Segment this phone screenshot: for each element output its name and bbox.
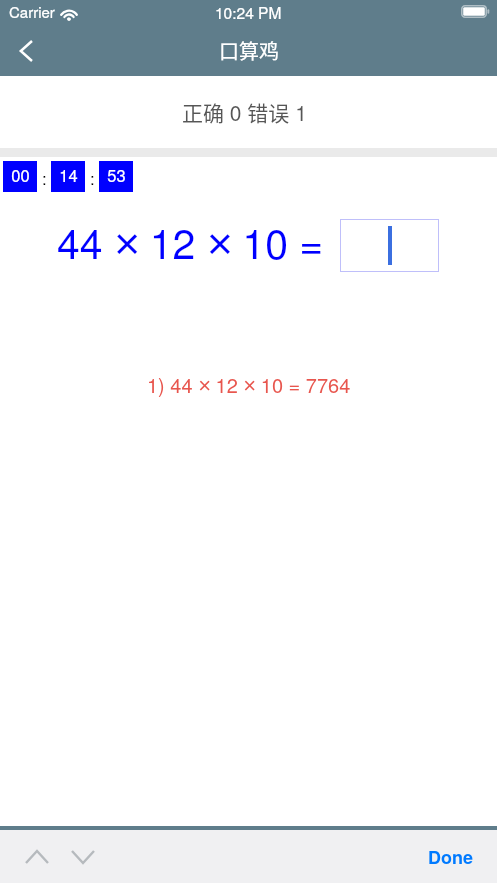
staticText: Done xyxy=(428,844,473,870)
staticText: 44 × 12 × 10 = xyxy=(57,212,324,271)
staticText: 10:24 PM xyxy=(215,1,282,23)
staticText: Carrier xyxy=(9,1,55,22)
staticText: : xyxy=(42,165,47,189)
staticText: 1) 44 × 12 × 10 = 7764 xyxy=(147,370,351,399)
button[interactable]: Done xyxy=(412,834,497,880)
button[interactable]: Next field xyxy=(60,834,106,880)
staticText: 14 xyxy=(59,163,78,187)
staticText: 正确 0 错误 1 xyxy=(182,97,307,127)
staticText: 口算鸡 xyxy=(219,36,279,65)
button[interactable] xyxy=(340,219,439,272)
staticText: : xyxy=(90,165,95,189)
button[interactable]: Back xyxy=(3,29,49,73)
staticText: 53 xyxy=(107,163,126,187)
staticText: 00 xyxy=(11,163,30,187)
button[interactable]: Previous field xyxy=(14,834,60,880)
